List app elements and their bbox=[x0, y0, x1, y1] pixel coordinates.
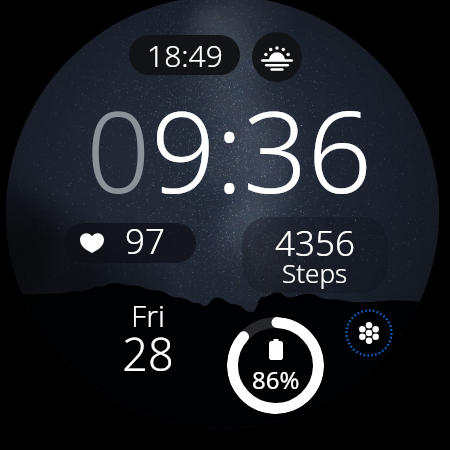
staticText: Steps bbox=[282, 255, 348, 290]
staticText: 86% bbox=[252, 363, 300, 396]
staticText: Fri bbox=[131, 295, 165, 336]
staticText: 18:49 bbox=[147, 35, 223, 75]
staticText: 97 bbox=[125, 223, 165, 257]
staticText: 28 bbox=[122, 323, 174, 384]
button[interactable]: Weather sunset bbox=[252, 32, 302, 82]
button[interactable]: 4356 bbox=[242, 217, 388, 293]
button[interactable]: Apps bbox=[345, 309, 393, 357]
button[interactable]: Battery 86 percent bbox=[227, 317, 324, 414]
staticText: 4356 bbox=[275, 219, 355, 267]
staticText: 0 bbox=[86, 72, 151, 226]
button[interactable]: 18:49 bbox=[129, 35, 240, 75]
button[interactable]: Fri bbox=[108, 294, 188, 378]
staticText: 9:36 bbox=[151, 72, 373, 226]
button[interactable]: 97 bbox=[64, 223, 196, 263]
